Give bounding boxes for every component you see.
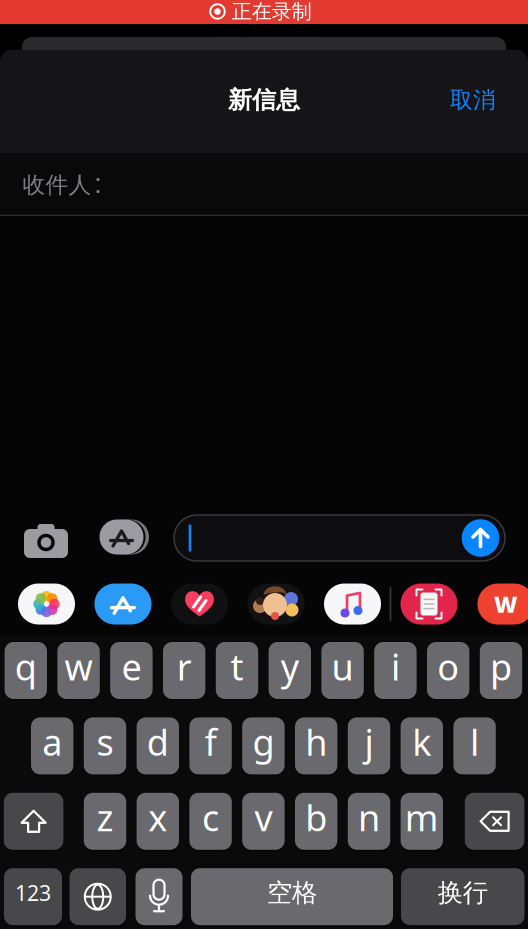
staticText: g (252, 718, 274, 766)
button[interactable]: q (5, 642, 47, 699)
staticText: j (364, 718, 373, 766)
button[interactable]: g (242, 717, 285, 774)
staticText: w (65, 643, 93, 690)
staticText: 新信息 (228, 85, 300, 115)
button[interactable]: h (295, 717, 337, 774)
staticText: m (405, 793, 439, 841)
button[interactable]: e (110, 642, 153, 699)
staticText: a (42, 718, 62, 766)
staticText: l (470, 718, 479, 766)
button[interactable]: App Store (93, 515, 149, 559)
staticText: n (358, 793, 380, 841)
button[interactable]: o (427, 642, 469, 699)
staticText: o (437, 643, 459, 690)
button[interactable]: 删除 (465, 793, 524, 850)
staticText: d (147, 718, 169, 766)
button[interactable]: u (321, 642, 364, 699)
button[interactable]: z (84, 793, 126, 850)
button[interactable]: 拟我表情 (247, 583, 304, 624)
button[interactable]: c (189, 793, 232, 850)
button[interactable]: w (57, 642, 100, 699)
button[interactable]: 相机 (20, 518, 72, 562)
button[interactable]: 听写 (135, 868, 182, 925)
staticText: f (205, 718, 217, 766)
button[interactable]: n (348, 793, 390, 850)
staticText: 123 (15, 878, 51, 907)
staticText: i (391, 643, 400, 690)
button[interactable]: i (374, 642, 417, 699)
button[interactable]: 换行 (401, 868, 524, 925)
staticText: t (230, 643, 243, 690)
button[interactable]: y (269, 642, 311, 699)
button[interactable]: 照片 (18, 583, 75, 624)
button[interactable]: b (295, 793, 337, 850)
button[interactable]: k (401, 717, 443, 774)
staticText: 取消 (450, 86, 496, 114)
button[interactable]: 123 (4, 868, 62, 925)
button[interactable]: x (137, 793, 179, 850)
button[interactable]: App Store (94, 583, 151, 624)
staticText: b (305, 793, 327, 841)
button[interactable]: t (216, 642, 258, 699)
button[interactable]: m (401, 793, 443, 850)
staticText: k (412, 718, 431, 766)
button[interactable]: a (31, 717, 73, 774)
button[interactable]: v (242, 793, 285, 850)
button[interactable]: 停止录制 (0, 0, 528, 24)
button[interactable]: Digital Touch (171, 583, 228, 624)
button[interactable]: l (453, 717, 496, 774)
button[interactable]: f (189, 717, 232, 774)
staticText: x (148, 793, 167, 841)
staticText: u (332, 643, 354, 690)
button[interactable]: 音乐 (324, 583, 381, 624)
button[interactable]: p (480, 642, 522, 699)
button[interactable]: Shift (4, 793, 63, 850)
staticText: q (15, 643, 37, 690)
staticText: e (121, 643, 141, 690)
staticText: h (305, 718, 327, 766)
button[interactable]: 下一个键盘 (69, 868, 126, 925)
button[interactable]: r (163, 642, 205, 699)
button[interactable]: 扫描 (400, 583, 457, 624)
button[interactable]: s (84, 717, 126, 774)
staticText: c (202, 793, 219, 841)
staticText: z (96, 793, 113, 841)
staticText: 空格 (267, 877, 317, 908)
staticText: p (490, 643, 512, 690)
staticText: s (96, 718, 113, 766)
staticText: v (254, 793, 272, 841)
button[interactable]: 收件人 (0, 153, 528, 216)
staticText: W (494, 589, 518, 619)
staticText: y (281, 643, 299, 690)
staticText: 收件人 (22, 171, 91, 199)
button[interactable]: 信息 (174, 515, 505, 561)
staticText: 换行 (438, 877, 488, 908)
button[interactable]: WPS Office (477, 583, 528, 624)
button[interactable]: 取消 (433, 78, 513, 122)
button[interactable]: j (348, 717, 390, 774)
staticText: 正在录制 (232, 0, 312, 24)
button[interactable]: 发送 (460, 517, 501, 558)
button[interactable]: 空格 (191, 868, 393, 925)
staticText: r (177, 643, 192, 690)
button[interactable]: d (137, 717, 179, 774)
